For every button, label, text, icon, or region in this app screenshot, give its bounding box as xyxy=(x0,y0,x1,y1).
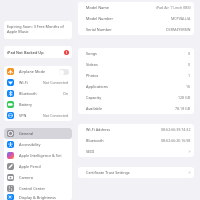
staticText: 0 xyxy=(188,62,191,67)
staticText: D3RM4YSRMN xyxy=(166,27,191,32)
button[interactable]: Model Name xyxy=(78,2,194,13)
button[interactable]: General xyxy=(4,128,72,139)
button[interactable]: Control Center xyxy=(4,183,72,194)
staticText: 128 GB xyxy=(178,95,191,100)
staticText: General xyxy=(19,131,33,136)
button[interactable]: Songs xyxy=(78,48,194,59)
button[interactable]: Videos xyxy=(78,59,194,70)
staticText: Display & Brightness xyxy=(19,195,56,200)
button[interactable]: Battery xyxy=(4,99,72,110)
staticText: Not Connected xyxy=(43,80,69,85)
staticText: Videos xyxy=(86,62,98,67)
staticText: Model Name xyxy=(86,5,109,10)
button[interactable]: Photos xyxy=(78,70,194,81)
staticText: On xyxy=(63,91,69,96)
button[interactable]: VPN xyxy=(4,110,72,121)
button[interactable]: Camera xyxy=(4,172,72,183)
button[interactable]: Bluetooth xyxy=(78,135,194,146)
button[interactable]: Applications xyxy=(78,81,194,92)
button[interactable]: iPad Not Backed Up xyxy=(4,46,72,58)
staticText: 78.18 GB xyxy=(175,106,191,111)
staticText: Apple Pencil xyxy=(19,164,41,169)
staticText: Bluetooth xyxy=(86,138,104,143)
button[interactable]: Apple Intelligence & Siri xyxy=(4,150,72,161)
staticText: Capacity xyxy=(86,95,102,100)
staticText: Camera xyxy=(19,175,33,180)
button[interactable]: Model Number xyxy=(78,13,194,24)
button[interactable]: Expiring Soon: 3 Free Months of Apple Mu… xyxy=(4,21,72,39)
staticText: Serial Number xyxy=(86,27,112,32)
button[interactable]: Wi-Fi Address xyxy=(78,124,194,135)
staticText: Wi-Fi Address xyxy=(86,127,111,132)
staticText: Available xyxy=(86,106,103,111)
staticText: Photos xyxy=(86,73,99,78)
staticText: VPN xyxy=(19,113,27,118)
staticText: 08:62:66:39:74:32 xyxy=(161,127,191,132)
button[interactable]: Accessibility xyxy=(4,139,72,150)
staticText: Airplane Mode xyxy=(19,69,46,74)
staticText: Wi-Fi xyxy=(19,80,28,85)
button[interactable]: Airplane Mode xyxy=(4,66,72,77)
staticText: ! xyxy=(66,51,67,55)
staticText: Applications xyxy=(86,84,108,89)
staticText: MCPVALL/A xyxy=(171,16,191,21)
staticText: 1 xyxy=(188,73,191,78)
staticText: Accessibility xyxy=(19,142,41,147)
button[interactable]: Certificate Trust Settings xyxy=(78,167,194,178)
staticText: Control Center xyxy=(19,186,46,191)
staticText: Expiring Soon: 3 Free Months of Apple Mu… xyxy=(7,24,64,34)
staticText: Model Number xyxy=(86,16,114,21)
staticText: 0 xyxy=(188,51,191,56)
staticText: 08:62:66:2E:16:98 xyxy=(161,138,191,143)
staticText: Battery xyxy=(19,102,32,107)
staticText: Songs xyxy=(86,51,97,56)
button[interactable]: Wi-Fi xyxy=(4,77,72,88)
staticText: SEID xyxy=(86,149,95,154)
staticText: iPad Air 11-inch (M3) xyxy=(156,5,191,10)
button[interactable]: SEID xyxy=(78,146,194,157)
button[interactable]: Available xyxy=(78,103,194,114)
button[interactable]: Apple Pencil xyxy=(4,161,72,172)
staticText: 16 xyxy=(186,84,191,89)
button[interactable]: Serial Number xyxy=(78,24,194,35)
staticText: Apple Intelligence & Siri xyxy=(19,153,62,158)
staticText: Bluetooth xyxy=(19,91,37,96)
staticText: Certificate Trust Settings xyxy=(86,170,130,175)
staticText: Not Connected xyxy=(43,113,69,118)
button[interactable]: Bluetooth xyxy=(4,88,72,99)
button[interactable]: Capacity xyxy=(78,92,194,103)
button[interactable]: Display & Brightness xyxy=(4,194,72,200)
staticText: iPad Not Backed Up xyxy=(7,50,44,55)
